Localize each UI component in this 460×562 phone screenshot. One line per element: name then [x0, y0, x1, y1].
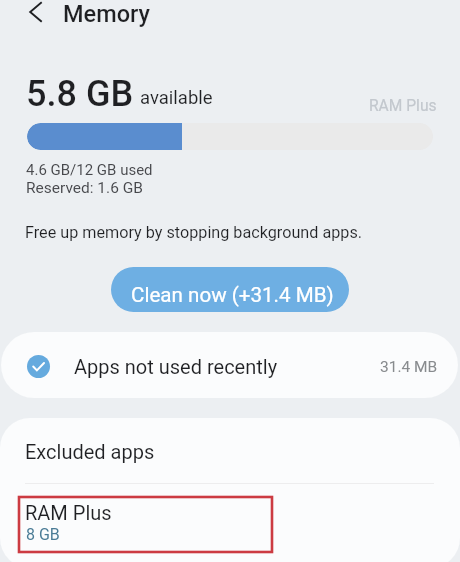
button[interactable]: Apps not used recently	[1, 332, 458, 398]
staticText: available	[140, 87, 213, 109]
staticText: 5.8 GB	[26, 73, 134, 115]
button[interactable]: Excluded apps	[0, 418, 460, 483]
staticText: 8 GB	[26, 525, 60, 544]
staticText: RAM Plus	[369, 97, 437, 115]
staticText: 31.4 MB	[380, 358, 438, 376]
staticText: Reserved: 1.6 GB	[26, 179, 143, 197]
staticText: Memory	[63, 0, 150, 28]
button[interactable]: Navigate back	[13, 0, 57, 34]
staticText: Apps not used recently	[74, 355, 278, 378]
button[interactable]: Clean now (+31.4 MB)	[111, 267, 349, 312]
staticText: Clean now (+31.4 MB)	[131, 283, 334, 307]
button[interactable]: RAM Plus	[0, 483, 460, 562]
staticText: Excluded apps	[25, 440, 155, 463]
staticText: RAM Plus	[25, 501, 112, 524]
staticText: 4.6 GB/12 GB used	[26, 161, 153, 179]
staticText: Free up memory by stopping background ap…	[25, 223, 363, 242]
